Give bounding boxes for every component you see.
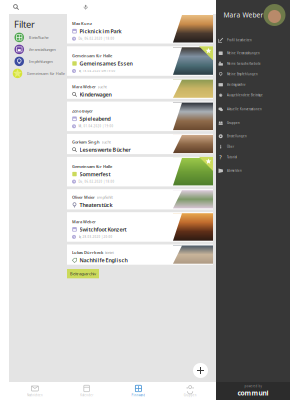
staticText: Mara Weber (223, 11, 263, 19)
button[interactable]: Veranstaltungen (14, 43, 67, 55)
staticText: Switchfoot Konzert (79, 226, 126, 233)
button[interactable]: Suche (9, 0, 216, 14)
staticText: powered by (244, 385, 261, 388)
staticText: sucht (101, 139, 110, 145)
staticText: Nachrichten (27, 393, 43, 397)
button[interactable]: Gemeinsam für Halle (14, 67, 67, 79)
staticText: Zeno Bayer (72, 108, 93, 114)
staticText: Gorkam Singh (72, 139, 100, 145)
button[interactable]: Profil bearbeiten (218, 35, 288, 45)
staticText: Gruppen (184, 393, 197, 397)
staticText: Oliver Meier (72, 195, 95, 200)
staticText: Do, 06.02.2020 | 18:00 (78, 37, 114, 40)
button[interactable]: Biete/Suche (14, 31, 67, 43)
staticText: Biete/Suche (28, 35, 48, 40)
button[interactable]: Meine Veranstaltungen (218, 48, 288, 58)
staticText: Filter (14, 18, 35, 30)
staticText: Theaterstück (79, 201, 112, 208)
staticText: Abmelden (227, 169, 242, 172)
button[interactable]: Über (218, 141, 288, 152)
staticText: Lesenswerte Bücher (79, 146, 130, 153)
staticText: Aktuelle Konversationen (227, 107, 262, 111)
button[interactable]: Gorkam Singh (67, 134, 213, 154)
button[interactable]: Aktuelle Konversationen (218, 104, 288, 114)
staticText: Ausgeblendete Beiträge (227, 93, 263, 97)
staticText: Sommerfest (79, 170, 110, 178)
staticText: Einstellungen (227, 134, 247, 138)
staticText: Gemeinsam für Halle (72, 53, 112, 58)
button[interactable]: Gemeinsam für Halle (67, 157, 213, 186)
staticText: Sa, 28.03.2020 | 20:00 (78, 235, 112, 239)
button[interactable]: Abmelden (218, 165, 288, 176)
staticText: Lukas Dürrbeck (72, 250, 103, 255)
staticText: Gemeinsam für Halle (72, 164, 112, 169)
staticText: Kinderwagen (79, 91, 111, 98)
staticText: Meine Empfehlungen (227, 72, 258, 76)
button[interactable]: Gruppen (164, 382, 216, 400)
staticText: Meine Gesuche/Gebote (227, 62, 261, 65)
staticText: Mi, 01.04.2020 | 19:00 (78, 124, 113, 128)
button[interactable]: Beitragsarchiv (218, 79, 288, 90)
button[interactable]: Mara Weber (67, 79, 213, 99)
staticText: Kalender (80, 393, 93, 397)
button[interactable]: Gruppen (218, 118, 288, 128)
staticText: Picknick im Park (79, 28, 121, 35)
staticText: ? (219, 154, 222, 161)
staticText: Profil bearbeiten (227, 38, 252, 42)
staticText: Max Kunz (72, 21, 92, 26)
staticText: empfiehlt (96, 195, 112, 200)
button[interactable]: ? (218, 152, 288, 162)
staticText: Veranstaltungen (28, 47, 55, 52)
staticText: Nachhilfe Englisch (79, 257, 127, 264)
staticText: Meine Veranstaltungen (227, 51, 260, 55)
staticText: Tutorial (227, 155, 237, 159)
staticText: Beitragsarchiv (70, 271, 96, 276)
staticText: Mara Weber (72, 219, 96, 224)
button[interactable]: Einstellungen (218, 131, 288, 141)
button[interactable]: Zeno Bayer (67, 102, 213, 131)
button[interactable]: Meine Empfehlungen (218, 69, 288, 79)
button[interactable]: Ausgeblendete Beiträge (218, 90, 288, 100)
button[interactable]: Mara Weber (67, 212, 213, 242)
button[interactable]: Profilbild (263, 4, 285, 26)
button[interactable]: Nachrichten (9, 382, 61, 400)
button[interactable]: Oliver Meier (67, 189, 213, 209)
staticText: Mara Weber (72, 84, 96, 89)
staticText: Pinnwand (131, 393, 145, 397)
button[interactable]: Kalender (61, 382, 113, 400)
staticText: Gemeinsames Essen (79, 60, 132, 67)
staticText: Sa, 18.04.2020 um 19:00 (78, 69, 115, 73)
staticText: Empfehlungen (28, 59, 52, 64)
button[interactable]: Gemeinsam für Halle (67, 46, 213, 76)
staticText: Gruppen (227, 121, 240, 125)
staticText: Beitragsarchiv (227, 83, 245, 86)
staticText: Do, 06.02.2020 | 18:00 (78, 180, 114, 183)
staticText: Spieleabend (79, 115, 110, 122)
button[interactable]: Max Kunz (67, 14, 213, 43)
staticText: Über (227, 145, 234, 148)
button[interactable]: Neuer Beitrag (193, 363, 208, 378)
staticText: bietet (104, 250, 113, 255)
button[interactable]: Pinnwand (112, 382, 164, 400)
button[interactable]: Meine Gesuche/Gebote (218, 58, 288, 69)
staticText: sucht (97, 84, 106, 89)
staticText: communi (237, 389, 268, 397)
button[interactable]: Empfehlungen (14, 55, 67, 67)
button[interactable]: Lukas Dürrbeck (67, 244, 213, 265)
button[interactable]: Beitragsarchiv (67, 269, 99, 278)
staticText: Gemeinsam für Halle (27, 71, 65, 76)
